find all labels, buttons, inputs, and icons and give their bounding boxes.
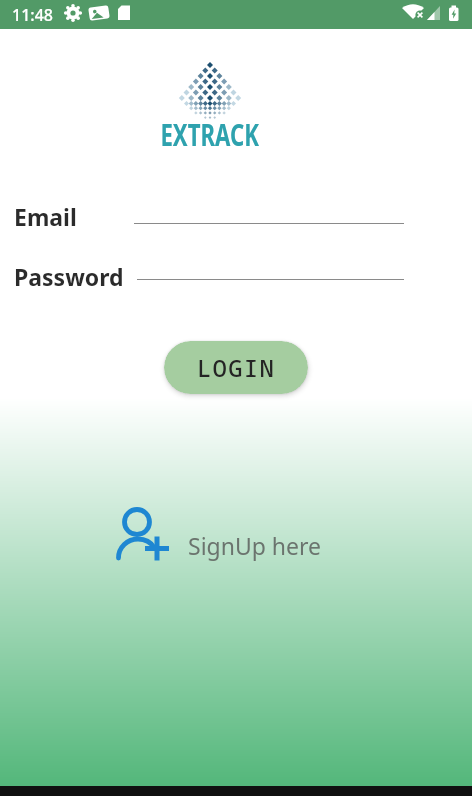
staticText: Email bbox=[14, 201, 77, 232]
staticText: Password bbox=[14, 261, 124, 292]
staticText: LOGIN bbox=[197, 351, 275, 384]
staticText: 11:48 bbox=[12, 4, 53, 26]
staticText: EXTRACK bbox=[160, 114, 260, 155]
staticText: SignUp here bbox=[188, 530, 322, 561]
